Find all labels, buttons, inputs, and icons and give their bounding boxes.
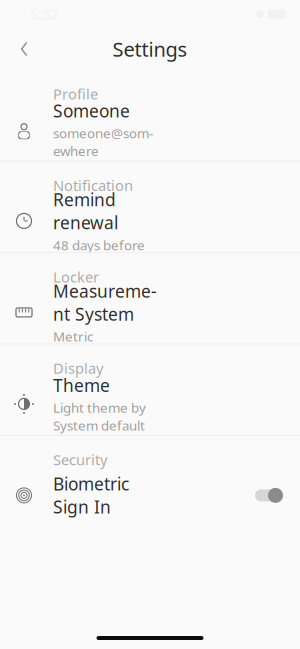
staticText: Notification (53, 175, 133, 195)
staticText: Biometric Sign In (53, 472, 129, 518)
button[interactable]: Someone (0, 107, 300, 151)
button[interactable]: Back (4, 29, 44, 69)
button[interactable]: Biometric Sign In (0, 473, 300, 517)
staticText: Locker (53, 267, 99, 286)
staticText: Someone (53, 99, 130, 122)
button[interactable]: Measurement System (0, 290, 300, 334)
staticText: Metric (53, 328, 93, 345)
staticText: Light theme by System default (53, 399, 146, 434)
staticText: 48 days before (53, 236, 145, 254)
staticText: Theme (53, 374, 110, 397)
button[interactable]: Remind renewal (0, 199, 300, 243)
staticText: Settings (112, 36, 187, 62)
staticText: Measurement System (53, 280, 157, 326)
button[interactable]: Theme (0, 382, 300, 426)
staticText: Display (53, 358, 103, 378)
staticText: Remind renewal (53, 188, 118, 234)
staticText: Security (53, 450, 107, 469)
staticText: someone@somewhere (53, 124, 153, 160)
staticText: Profile (53, 84, 98, 103)
